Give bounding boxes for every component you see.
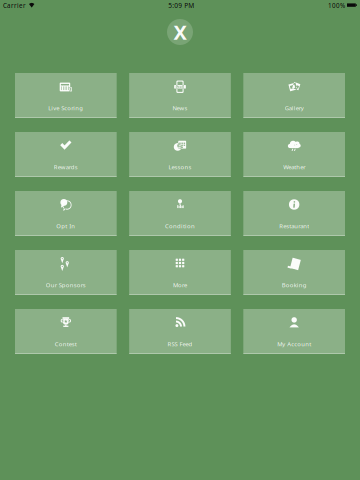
- button[interactable]: My Account: [243, 309, 345, 354]
- staticText: Opt In: [56, 222, 75, 230]
- button[interactable]: Restaurant: [243, 191, 345, 236]
- staticText: Gallery: [285, 104, 304, 112]
- button[interactable]: Booking: [243, 250, 345, 295]
- staticText: Booking: [282, 281, 307, 289]
- staticText: Carrier: [3, 1, 26, 10]
- button[interactable]: Rewards: [15, 132, 117, 177]
- button[interactable]: More: [129, 250, 231, 295]
- button[interactable]: Live Scoring: [15, 73, 117, 118]
- staticText: Lessons: [168, 163, 191, 171]
- button[interactable]: Lessons: [129, 132, 231, 177]
- button[interactable]: RSS Feed: [129, 309, 231, 354]
- button[interactable]: Contest: [15, 309, 117, 354]
- staticText: Our Sponsors: [46, 281, 86, 289]
- staticText: Live Scoring: [48, 104, 83, 112]
- button[interactable]: Our Sponsors: [15, 250, 117, 295]
- staticText: Contest: [55, 340, 77, 348]
- button[interactable]: Condition: [129, 191, 231, 236]
- button[interactable]: News: [129, 73, 231, 118]
- staticText: RSS Feed: [167, 340, 192, 348]
- button[interactable]: Opt In: [15, 191, 117, 236]
- staticText: My Account: [277, 340, 311, 348]
- staticText: More: [173, 281, 187, 289]
- staticText: Condition: [165, 222, 195, 230]
- staticText: News: [172, 104, 187, 112]
- button[interactable]: Gallery: [243, 73, 345, 118]
- staticText: Restaurant: [279, 222, 309, 230]
- staticText: 5:09 PM: [168, 1, 194, 10]
- staticText: 100%: [328, 1, 345, 10]
- staticText: X: [173, 19, 186, 45]
- staticText: Rewards: [54, 163, 78, 171]
- button[interactable]: Weather: [243, 132, 345, 177]
- button[interactable]: App logo: [167, 19, 193, 45]
- staticText: Weather: [283, 163, 305, 171]
